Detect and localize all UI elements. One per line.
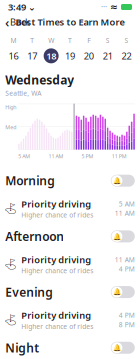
staticText: 4 PM bbox=[119, 264, 135, 273]
button[interactable]: T bbox=[23, 33, 42, 67]
button[interactable]: F bbox=[79, 33, 98, 67]
staticText: 11 AM bbox=[48, 153, 63, 160]
staticText: 🔔 bbox=[113, 233, 121, 240]
staticText: 11 AM bbox=[115, 255, 135, 264]
staticText: 20 bbox=[84, 50, 94, 62]
button[interactable]: Notifications for Night bbox=[111, 342, 135, 354]
staticText: M bbox=[10, 36, 16, 45]
button[interactable]: ⛳︎ bbox=[0, 249, 140, 279]
staticText: Higher chance of rides bbox=[21, 266, 93, 275]
button[interactable]: S bbox=[98, 33, 117, 67]
staticText: ⛳︎ bbox=[4, 258, 18, 270]
staticText: High bbox=[5, 104, 16, 111]
staticText: Priority driving bbox=[21, 253, 91, 266]
staticText: ⛳︎ bbox=[4, 202, 18, 215]
button[interactable]: M bbox=[4, 33, 23, 67]
staticText: 🔔 bbox=[113, 177, 121, 184]
staticText: Higher chance of rides bbox=[21, 211, 93, 219]
staticText: Seattle, WA bbox=[5, 89, 41, 98]
staticText: S bbox=[125, 36, 129, 45]
staticText: 5 PM bbox=[82, 153, 94, 160]
staticText: ‹ bbox=[5, 13, 9, 31]
button[interactable]: Notifications for Afternoon bbox=[111, 230, 135, 242]
staticText: 17 bbox=[27, 50, 37, 62]
staticText: 8 PM bbox=[119, 320, 135, 329]
staticText: 21 bbox=[103, 50, 113, 62]
staticText: T bbox=[68, 36, 72, 45]
staticText: Night bbox=[5, 340, 39, 356]
staticText: Priority driving bbox=[21, 309, 91, 321]
button[interactable]: W bbox=[42, 33, 61, 67]
button[interactable]: ⛳︎ bbox=[0, 194, 140, 223]
button[interactable]: ⛳︎ bbox=[0, 305, 140, 335]
staticText: S bbox=[106, 36, 110, 45]
staticText: T bbox=[30, 36, 34, 45]
staticText: Med bbox=[5, 124, 16, 131]
staticText: 🔔 bbox=[113, 344, 121, 351]
staticText: Wednesday bbox=[5, 72, 74, 88]
staticText: 16 bbox=[8, 50, 18, 62]
staticText: F bbox=[87, 36, 90, 45]
staticText: 11 PM bbox=[112, 153, 127, 160]
staticText: ⛳︎ bbox=[4, 314, 18, 326]
button[interactable]: T bbox=[61, 33, 79, 67]
staticText: Higher chance of rides bbox=[21, 322, 93, 331]
staticText: 19 bbox=[65, 50, 75, 62]
button[interactable]: S bbox=[117, 33, 136, 67]
staticText: Best Times to Earn More bbox=[15, 16, 124, 28]
staticText: 3:49 ⌄ bbox=[8, 1, 36, 13]
staticText: Afternoon bbox=[5, 228, 64, 244]
staticText: ··· bbox=[101, 2, 107, 12]
button[interactable]: Notifications for Morning bbox=[111, 175, 135, 187]
staticText: 11 AM bbox=[115, 209, 135, 218]
staticText: 22 bbox=[122, 50, 132, 62]
staticText: 4 PM bbox=[119, 311, 135, 320]
staticText: W bbox=[48, 36, 54, 45]
staticText: 5 AM bbox=[119, 199, 135, 208]
staticText: ≈ bbox=[110, 2, 118, 12]
staticText: Priority driving bbox=[21, 198, 91, 210]
staticText: Evening bbox=[5, 284, 53, 300]
staticText: Morning bbox=[5, 173, 55, 189]
staticText: Back bbox=[10, 16, 30, 28]
staticText: 18 bbox=[46, 50, 56, 62]
button[interactable]: ‹ bbox=[0, 14, 35, 30]
button[interactable]: Notifications for Evening bbox=[111, 286, 135, 298]
staticText: 🔔 bbox=[113, 288, 121, 296]
staticText: 5 AM bbox=[18, 153, 30, 160]
